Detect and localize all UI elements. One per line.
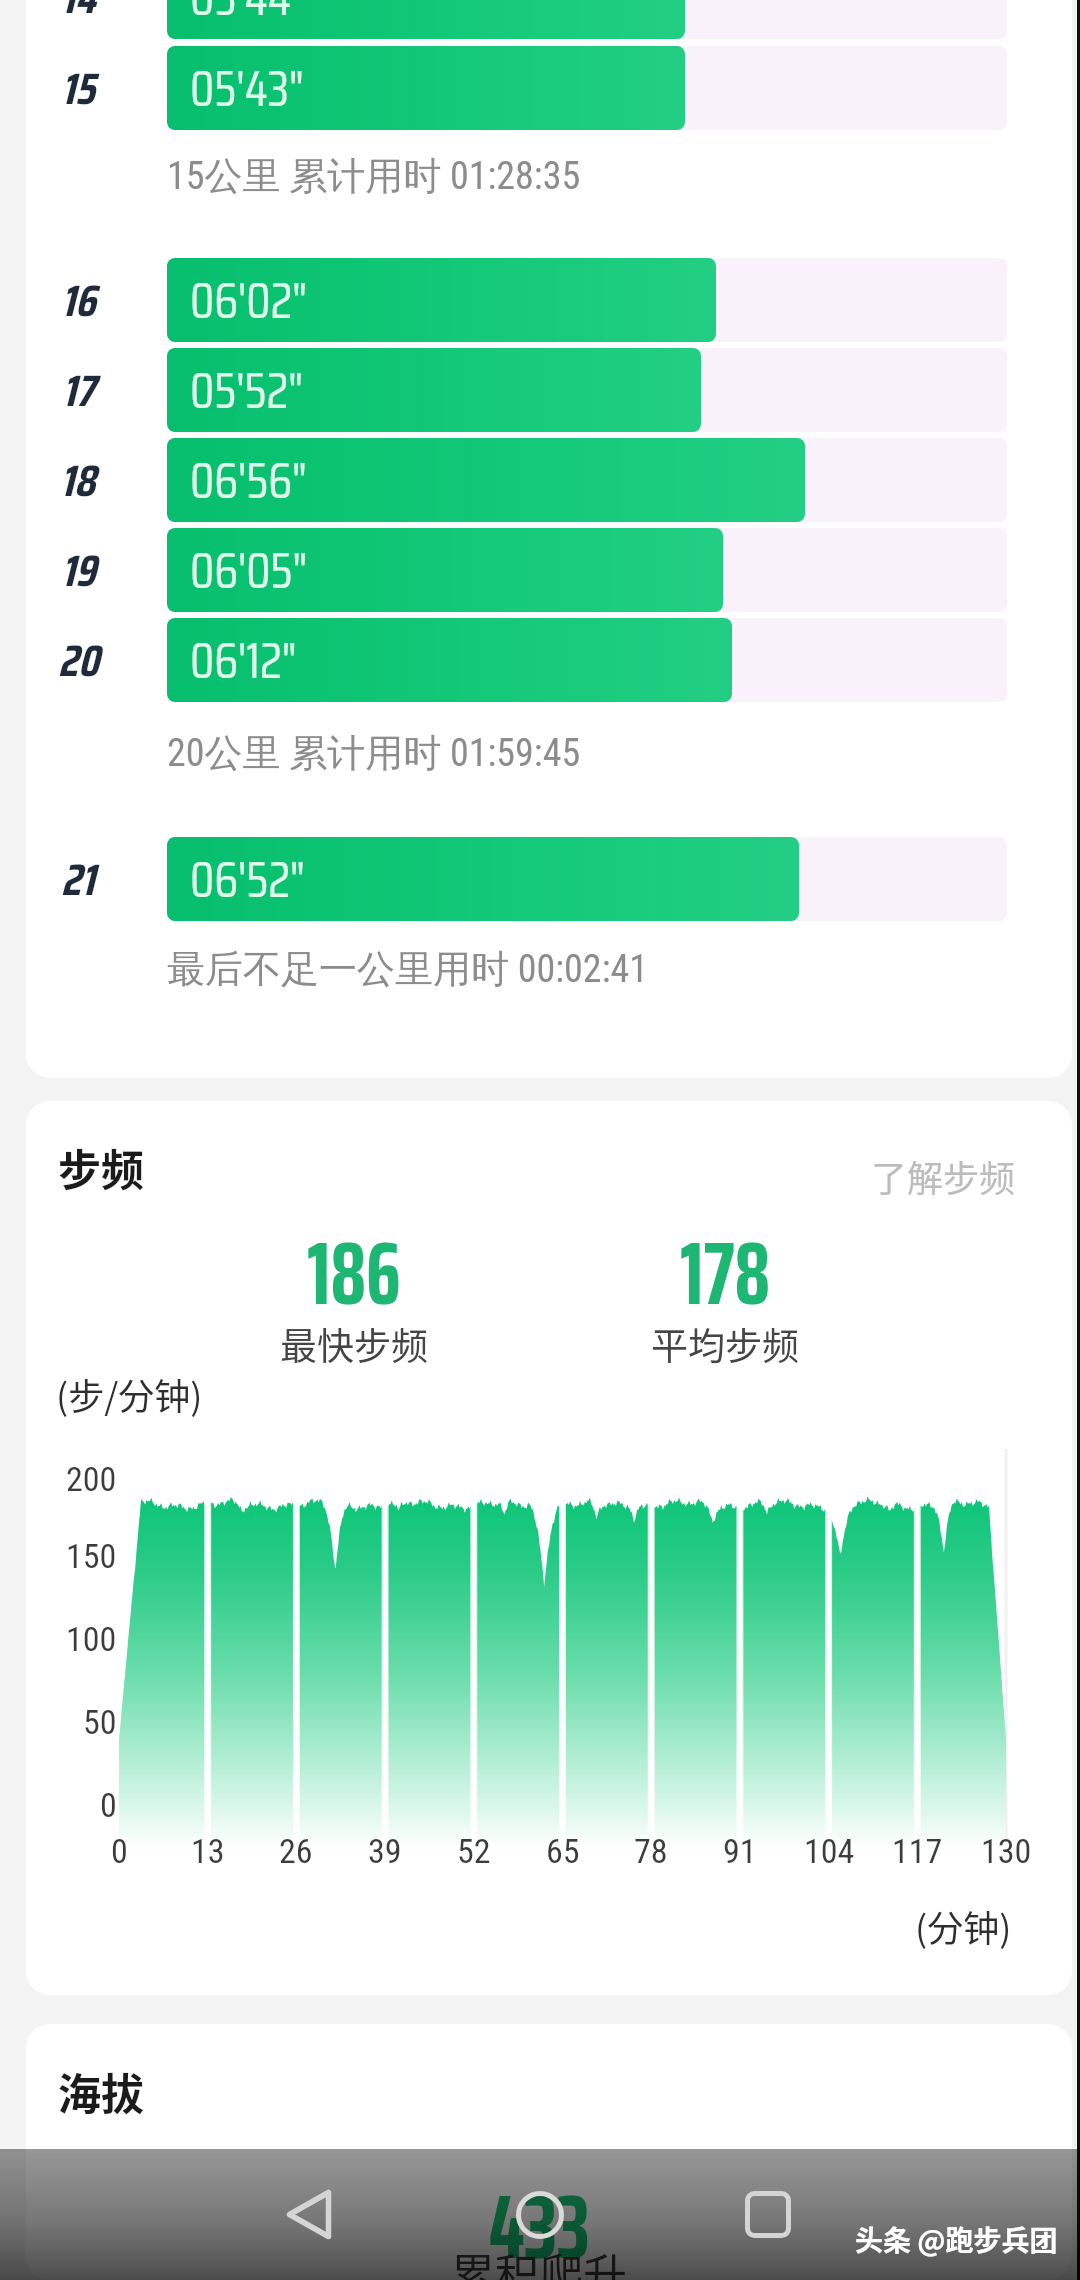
staticText: 52 <box>457 1831 491 1871</box>
staticText: 178 <box>680 1204 771 1343</box>
staticText: 累积爬升 <box>451 2240 627 2280</box>
staticText: 117 <box>892 1831 943 1871</box>
staticText: 50 <box>83 1702 117 1742</box>
staticText: 100 <box>66 1619 117 1659</box>
button[interactable]: 21 <box>26 837 1007 921</box>
staticText: 26 <box>279 1831 313 1871</box>
button[interactable]: 20 <box>26 618 1007 702</box>
staticText: 18 <box>60 446 96 515</box>
staticText: 130 <box>981 1831 1032 1871</box>
button[interactable]: 16 <box>26 258 1007 342</box>
button[interactable]: Back <box>249 2149 369 2280</box>
staticText: 17 <box>62 356 95 425</box>
staticText: 06'12" <box>190 621 297 700</box>
button[interactable]: Home <box>480 2149 600 2280</box>
staticText: 65 <box>546 1831 580 1871</box>
staticText: 05'43" <box>190 49 304 128</box>
staticText: 06'56" <box>190 441 307 520</box>
staticText: 最后不足一公里用时 00:02:41 <box>167 945 649 993</box>
staticText: 150 <box>66 1536 117 1576</box>
staticText: 91 <box>723 1831 757 1871</box>
staticText: 0 <box>100 1785 117 1825</box>
staticText: 头条 @跑步兵团 <box>855 2219 1058 2260</box>
staticText: 433 <box>489 2156 590 2280</box>
staticText: 了解步频 <box>871 1150 1016 1202</box>
staticText: 20 <box>58 626 99 695</box>
staticText: 05'44" <box>190 0 306 37</box>
button[interactable]: Recent apps <box>708 2149 828 2280</box>
staticText: 06'02" <box>190 261 307 340</box>
staticText: (步/分钟) <box>56 1368 203 1420</box>
staticText: 05'52" <box>190 351 303 430</box>
staticText: 21 <box>61 845 95 914</box>
button[interactable]: 15 <box>26 46 1007 130</box>
button[interactable]: 14 <box>26 0 1007 39</box>
staticText: 最快步频 <box>280 1317 428 1371</box>
button[interactable]: 17 <box>26 348 1007 432</box>
staticText: 104 <box>804 1831 855 1871</box>
staticText: 186 <box>307 1204 401 1343</box>
staticText: 步频 <box>58 1136 144 1198</box>
staticText: 06'52" <box>190 840 305 919</box>
staticText: (分钟) <box>915 1900 1012 1952</box>
staticText: 海拔 <box>58 2060 144 2122</box>
staticText: 16 <box>61 266 96 335</box>
staticText: 19 <box>61 536 96 605</box>
staticText: 13 <box>191 1831 225 1871</box>
staticText: 39 <box>368 1831 402 1871</box>
button[interactable]: 19 <box>26 528 1007 612</box>
staticText: 78 <box>634 1831 668 1871</box>
staticText: 15 <box>61 54 95 123</box>
staticText: 06'05" <box>190 531 308 610</box>
button[interactable]: 了解步频 <box>871 1150 1016 1202</box>
staticText: 20公里 累计用时 01:59:45 <box>167 729 581 777</box>
staticText: 15公里 累计用时 01:28:35 <box>167 152 581 200</box>
staticText: 平均步频 <box>651 1317 799 1371</box>
staticText: 14 <box>61 0 96 32</box>
staticText: 200 <box>66 1459 117 1499</box>
staticText: 0 <box>111 1831 128 1871</box>
button[interactable]: 18 <box>26 438 1007 522</box>
